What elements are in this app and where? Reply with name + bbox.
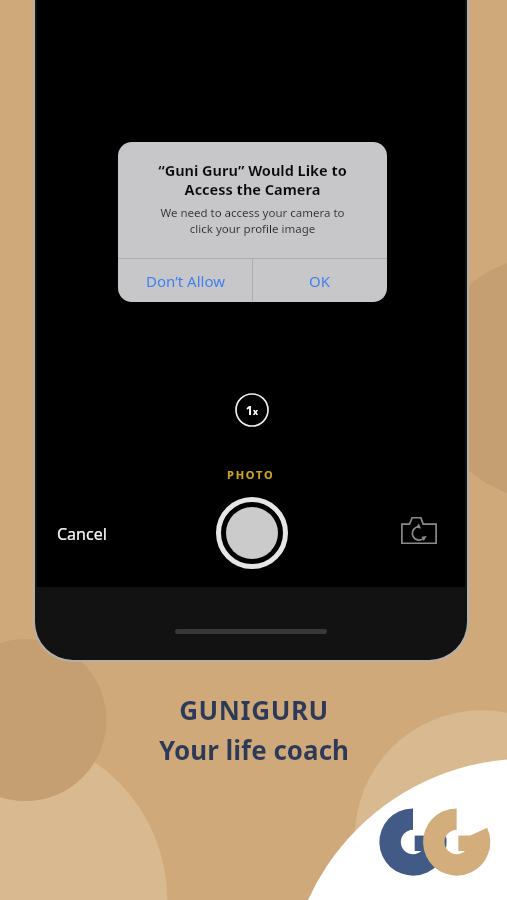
- staticText: Your life coach: [159, 732, 349, 767]
- staticText: “Guni Guru” Would Like to Access the Cam…: [158, 160, 347, 199]
- button[interactable]: Cancel: [57, 523, 107, 545]
- staticText: Don’t Allow: [146, 271, 225, 291]
- button[interactable]: Take photo: [216, 497, 288, 569]
- button[interactable]: Switch camera: [398, 511, 440, 549]
- staticText: GUNIGURU: [179, 692, 329, 727]
- button[interactable]: OK: [253, 259, 387, 302]
- staticText: x: [253, 406, 258, 418]
- other: GuniGuru logo: [371, 800, 489, 884]
- staticText: 1: [246, 402, 253, 418]
- button[interactable]: Zoom 1x: [235, 393, 269, 427]
- staticText: We need to access your camera to click y…: [160, 205, 345, 236]
- staticText: Cancel: [57, 523, 107, 545]
- staticText: OK: [309, 271, 331, 291]
- button[interactable]: Don’t Allow: [118, 259, 252, 302]
- staticText: PHOTO: [227, 467, 275, 482]
